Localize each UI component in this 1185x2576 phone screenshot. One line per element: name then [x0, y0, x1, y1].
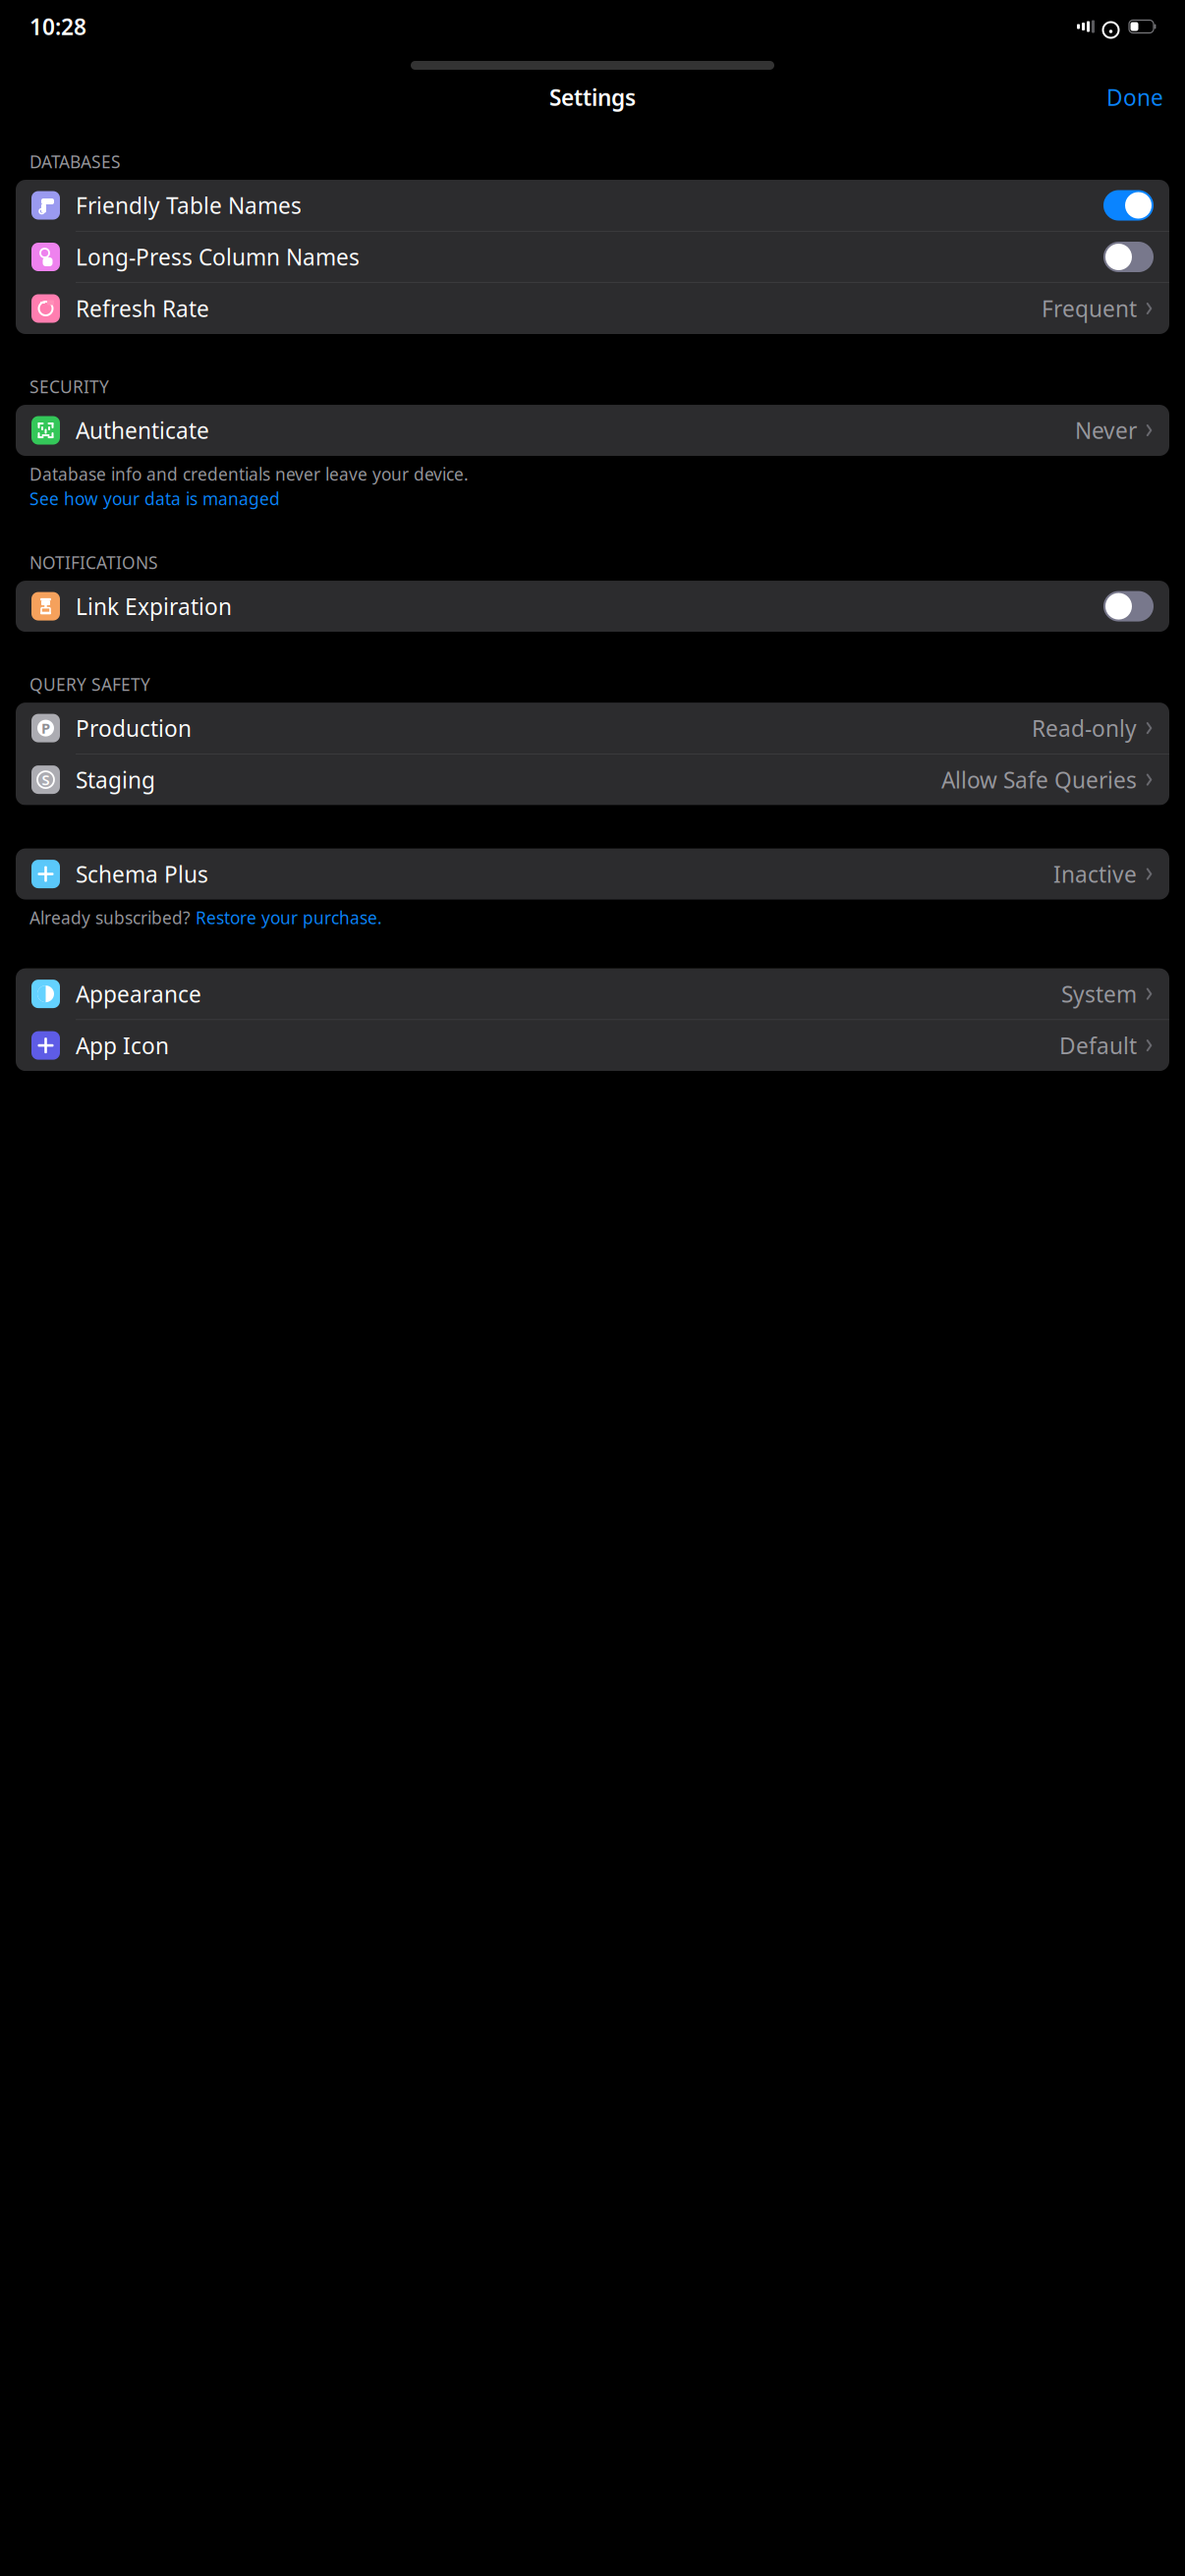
- staticText: Inactive: [1053, 859, 1137, 889]
- staticText: Link Expiration: [76, 591, 232, 621]
- staticText: P: [41, 719, 50, 738]
- staticText: Schema Plus: [76, 859, 208, 889]
- staticText: Database info and credentials never leav…: [29, 463, 469, 485]
- staticText: Frequent: [1042, 294, 1137, 323]
- staticText: Appearance: [76, 979, 201, 1009]
- staticText: Friendly Table Names: [76, 191, 302, 220]
- staticText: Allow Safe Queries: [941, 765, 1137, 795]
- staticText: Settings: [549, 82, 636, 112]
- staticText: QUERY SAFETY: [29, 673, 150, 696]
- button[interactable]: S: [16, 754, 1169, 805]
- staticText: S: [42, 770, 50, 789]
- button[interactable]: Friendly Table Names: [16, 180, 1169, 231]
- button[interactable]: Done: [1100, 77, 1169, 118]
- button[interactable]: Restore your purchase.: [196, 906, 382, 929]
- staticText: NOTIFICATIONS: [29, 551, 158, 574]
- staticText: Staging: [76, 765, 155, 795]
- staticText: Done: [1106, 82, 1163, 112]
- button[interactable]: P: [16, 703, 1169, 754]
- staticText: App Icon: [76, 1031, 169, 1060]
- staticText: Read-only: [1032, 713, 1137, 743]
- staticText: Refresh Rate: [76, 294, 209, 323]
- staticText: Never: [1075, 416, 1137, 445]
- button[interactable]: Schema Plus: [16, 848, 1169, 900]
- staticText: Production: [76, 713, 192, 743]
- button[interactable]: Refresh Rate: [16, 283, 1169, 334]
- staticText: System: [1061, 979, 1137, 1009]
- staticText: SECURITY: [29, 375, 109, 398]
- button[interactable]: Appearance: [16, 968, 1169, 1019]
- staticText: Restore your purchase.: [196, 906, 382, 929]
- staticText: Long-Press Column Names: [76, 242, 360, 272]
- staticText: DATABASES: [29, 150, 121, 173]
- button[interactable]: App Icon: [16, 1020, 1169, 1071]
- staticText: Authenticate: [76, 416, 209, 445]
- staticText: 10:28: [29, 12, 86, 41]
- button[interactable]: See how your data is managed: [29, 487, 1156, 510]
- staticText: Default: [1059, 1031, 1137, 1060]
- button[interactable]: Authenticate: [16, 405, 1169, 456]
- button[interactable]: Long-Press Column Names: [16, 231, 1169, 282]
- staticText: Already subscribed?: [29, 906, 196, 929]
- button[interactable]: Link Expiration: [16, 581, 1169, 632]
- staticText: See how your data is managed: [29, 487, 280, 510]
